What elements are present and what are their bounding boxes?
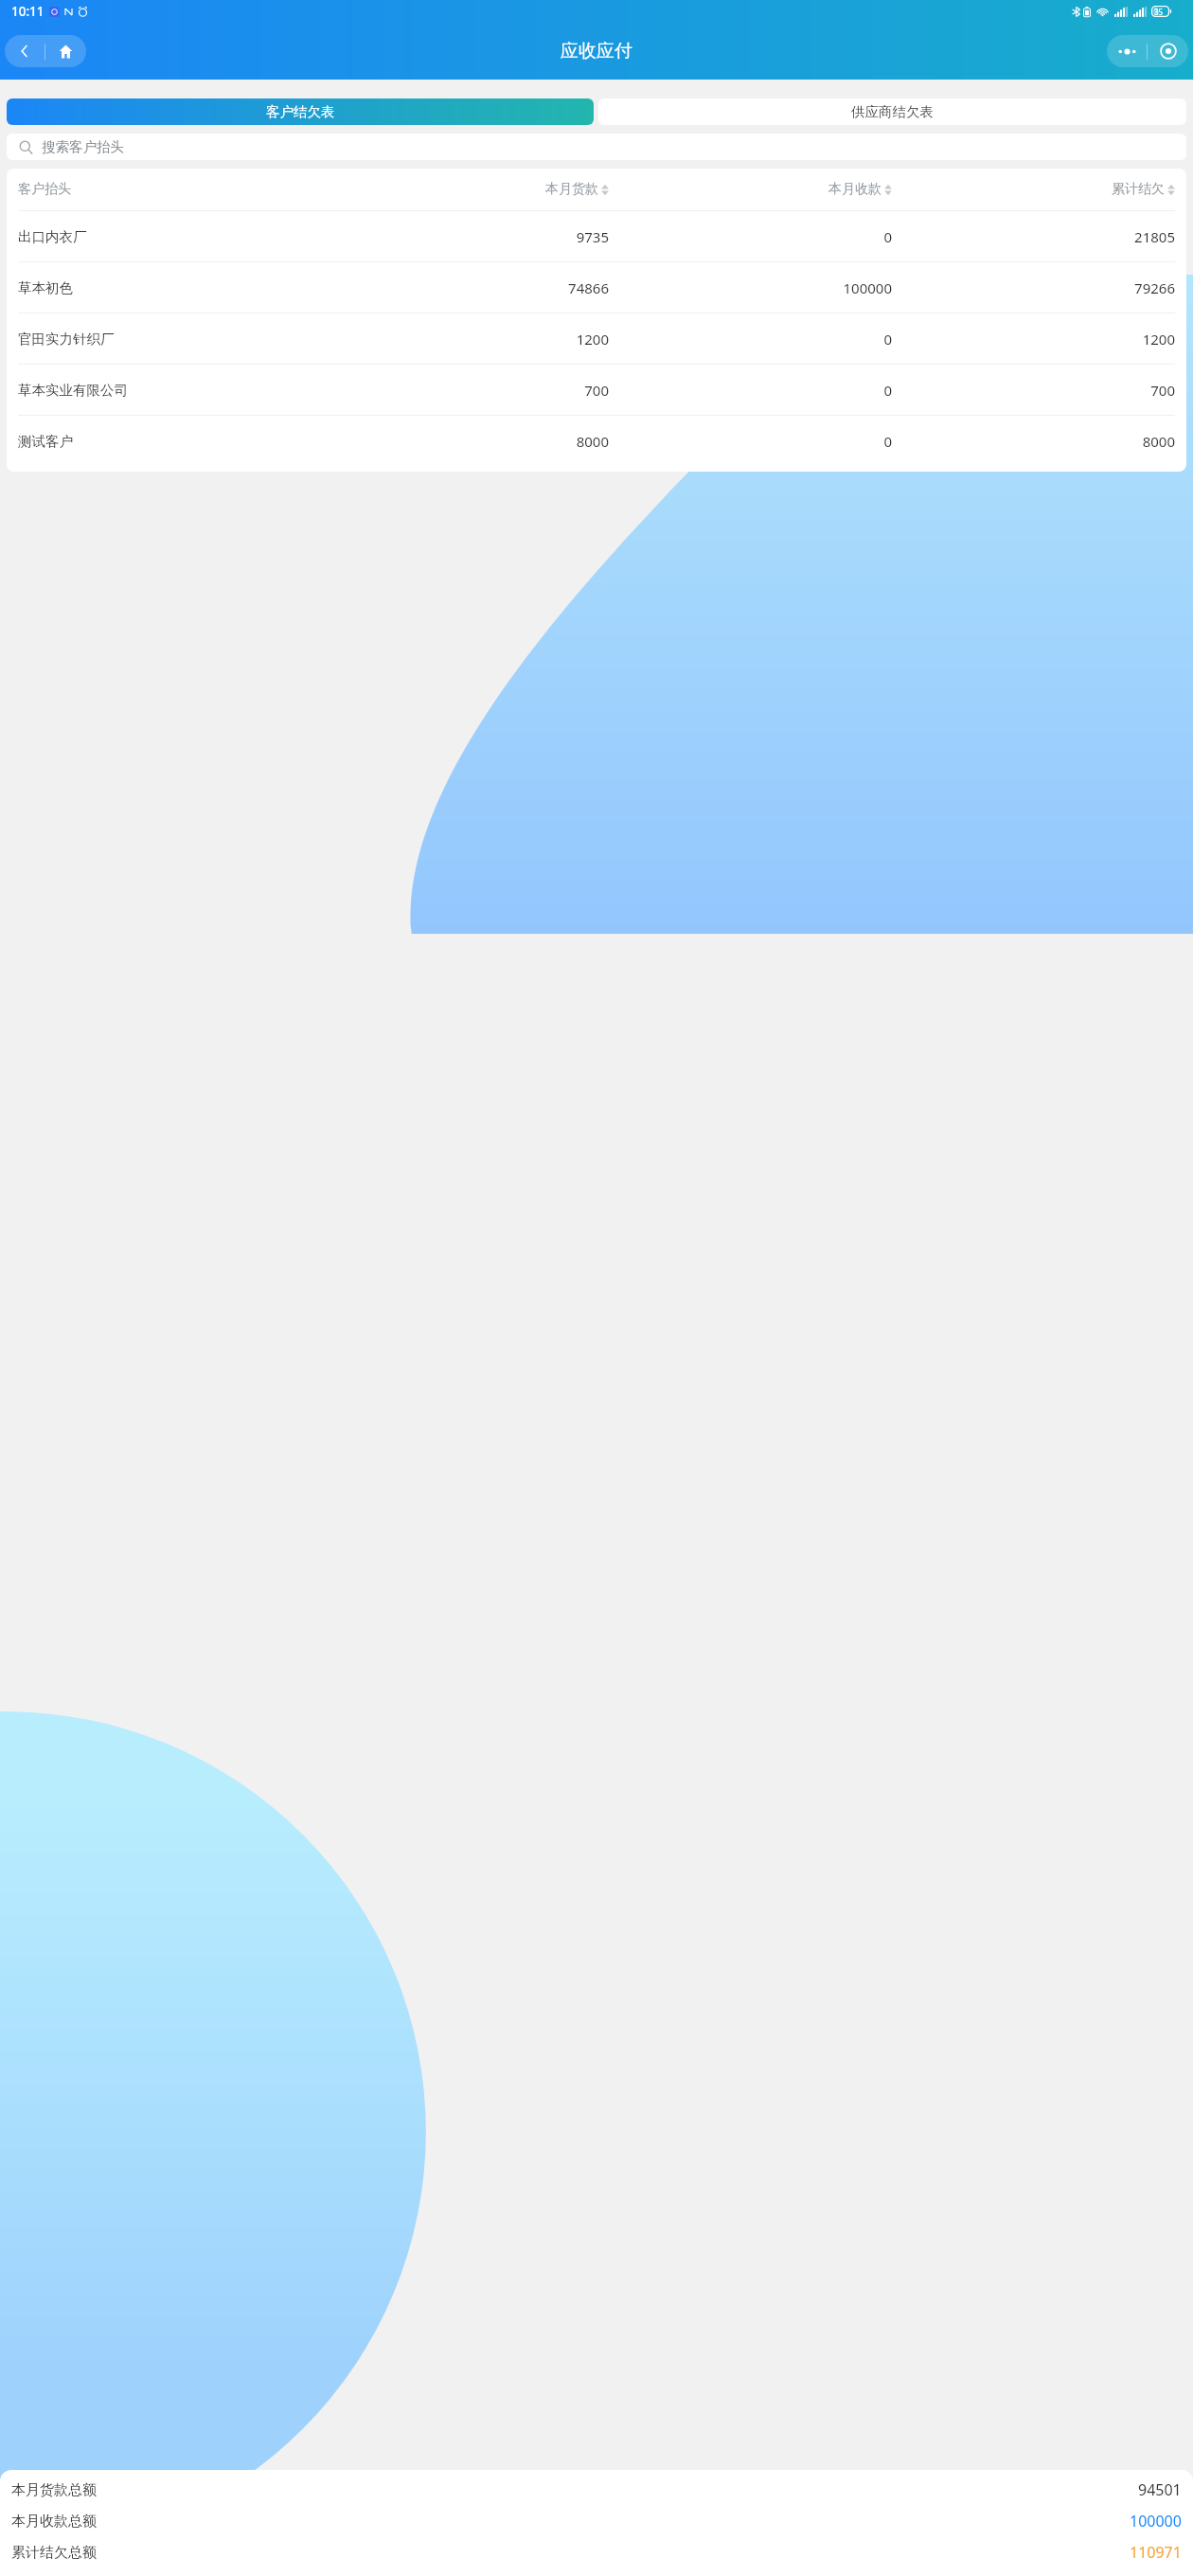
staticText: 累计结欠	[1112, 181, 1165, 198]
staticText: 本月收款	[828, 181, 881, 198]
button[interactable]: Back	[5, 35, 45, 67]
staticText: 本月货款总额	[11, 2481, 97, 2499]
staticText: 21805	[1134, 227, 1175, 246]
staticText: 搜索客户抬头	[42, 138, 124, 155]
button[interactable]: 出口内衣厂	[18, 211, 1175, 261]
button[interactable]: 官田实力针织厂	[18, 313, 1175, 364]
staticText: 9735	[576, 227, 609, 246]
button[interactable]: Back	[5, 35, 86, 67]
staticText: 35	[1154, 7, 1164, 17]
button[interactable]: 测试客户	[18, 416, 1175, 466]
staticText: 草本实业有限公司	[18, 382, 128, 399]
staticText: 100000	[1130, 2511, 1182, 2531]
staticText: 供应商结欠表	[851, 103, 934, 120]
staticText: 出口内衣厂	[18, 228, 87, 245]
button[interactable]: 供应商结欠表	[598, 98, 1186, 125]
staticText: 8000	[576, 432, 609, 451]
staticText: 测试客户	[18, 433, 73, 450]
button[interactable]: 累计结欠总额	[11, 2542, 1182, 2563]
staticText: 0	[883, 227, 892, 246]
button[interactable]: 客户结欠表	[7, 98, 594, 125]
staticText: 700	[584, 381, 609, 400]
staticText: 1200	[576, 330, 609, 349]
staticText: 0	[883, 381, 892, 400]
staticText: 本月收款总额	[11, 2513, 97, 2531]
staticText: 客户抬头	[18, 181, 71, 198]
button[interactable]: 本月货款	[326, 181, 609, 198]
staticText: 官田实力针织厂	[18, 331, 115, 348]
button[interactable]: 搜索客户抬头	[7, 134, 1186, 160]
staticText: 10:11	[11, 3, 45, 20]
staticText: 700	[1150, 381, 1175, 400]
staticText: 草本初色	[18, 279, 73, 296]
staticText: 79266	[1134, 278, 1175, 297]
staticText: 0	[883, 432, 892, 451]
staticText: 1200	[1142, 330, 1175, 349]
button[interactable]: 本月收款	[609, 181, 892, 198]
button[interactable]: Home	[45, 35, 86, 67]
staticText: 94501	[1138, 2479, 1182, 2500]
button[interactable]: 草本初色	[18, 262, 1175, 313]
button[interactable]: Close	[1148, 35, 1188, 67]
staticText: 110971	[1130, 2542, 1182, 2563]
button[interactable]: 累计结欠	[892, 181, 1175, 198]
staticText: 应收应付	[561, 40, 632, 63]
staticText: 累计结欠总额	[11, 2544, 97, 2562]
staticText: 8000	[1142, 432, 1175, 451]
button[interactable]: 本月货款总额	[11, 2479, 1182, 2500]
button[interactable]: More options	[1107, 35, 1188, 67]
staticText: 本月货款	[545, 181, 598, 198]
staticText: 0	[883, 330, 892, 349]
staticText: 客户结欠表	[266, 103, 335, 120]
button[interactable]: More options	[1107, 35, 1147, 67]
button[interactable]: 草本实业有限公司	[18, 365, 1175, 415]
staticText: 100000	[843, 278, 892, 297]
button[interactable]: 本月收款总额	[11, 2511, 1182, 2531]
staticText: 74866	[568, 278, 609, 297]
